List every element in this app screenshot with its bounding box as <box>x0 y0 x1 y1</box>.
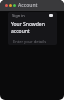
button[interactable]: Maximize <box>13 4 16 7</box>
staticText: Your Snowden account <box>11 21 54 35</box>
button[interactable]: Close <box>5 4 8 7</box>
staticText: Sign in <box>12 13 25 18</box>
staticText: Enter your details <box>13 39 47 44</box>
staticText: Account <box>18 2 38 9</box>
button[interactable]: Minimize <box>9 4 12 7</box>
